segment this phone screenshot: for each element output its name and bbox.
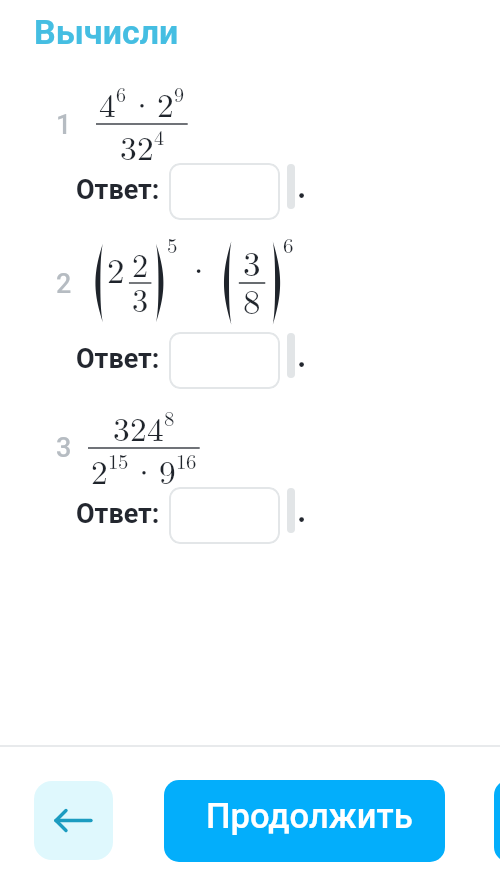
button[interactable]: Назад [34,781,113,860]
button[interactable]: Продолжить [164,780,445,862]
staticText: Продолжить [206,796,413,836]
button[interactable]: Далее [494,780,500,862]
staticText: Ответ: [76,343,160,375]
staticText: Ответ: [76,174,160,206]
button[interactable] [169,487,280,544]
button[interactable] [169,332,280,389]
staticText: 2 [56,268,72,300]
staticText: Вычисли [34,12,179,52]
staticText: 1 [56,109,72,141]
staticText: Ответ: [76,498,160,530]
staticText: 3 [56,432,72,464]
button[interactable] [169,163,280,220]
